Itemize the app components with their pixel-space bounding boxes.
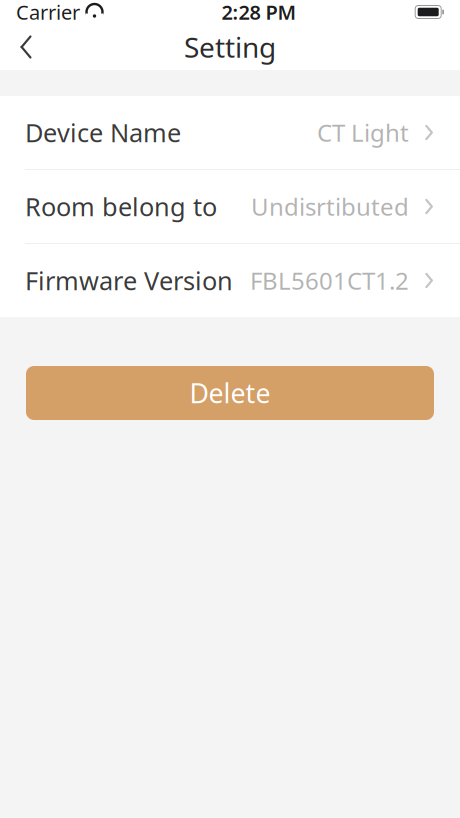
- staticText: FBL5601CT1.2: [250, 265, 409, 296]
- staticText: Firmware Version: [25, 264, 233, 297]
- staticText: Room belong to: [25, 190, 217, 223]
- staticText: Carrier: [16, 0, 80, 25]
- staticText: Undisrtibuted: [251, 191, 409, 222]
- staticText: Device Name: [25, 116, 181, 149]
- button[interactable]: Firmware Version: [0, 244, 460, 317]
- staticText: Setting: [184, 28, 276, 66]
- button[interactable]: Delete: [26, 366, 434, 420]
- button[interactable]: Device Name: [0, 96, 460, 169]
- staticText: 2:28 PM: [222, 0, 297, 25]
- staticText: CT Light: [317, 117, 409, 148]
- staticText: Delete: [189, 375, 270, 411]
- button[interactable]: Back: [0, 24, 52, 70]
- button[interactable]: Room belong to: [0, 170, 460, 243]
